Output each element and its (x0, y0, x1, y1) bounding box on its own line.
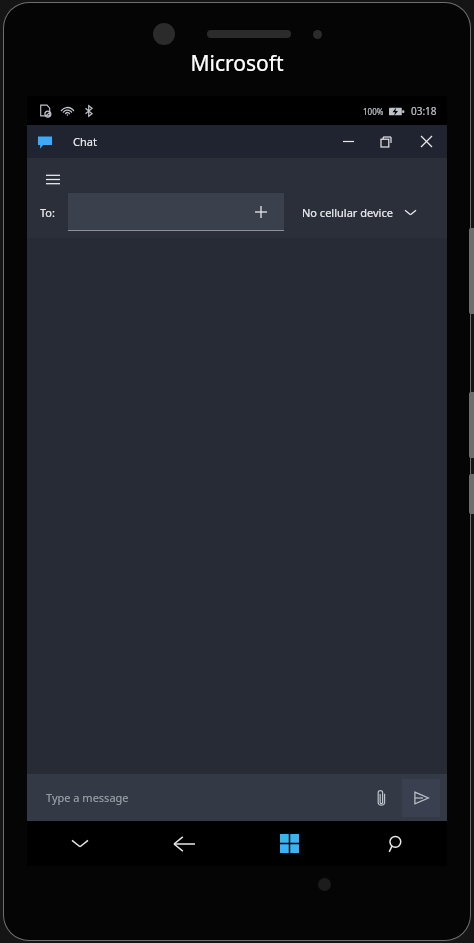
staticText: 100% (363, 106, 384, 117)
staticText: To: (40, 205, 55, 220)
button[interactable]: Restore (367, 125, 405, 158)
staticText: Type a message (46, 790, 129, 805)
button[interactable]: Back (132, 821, 237, 866)
button[interactable]: Send (402, 779, 440, 817)
button[interactable]: Minimize (329, 125, 367, 158)
staticText: No cellular device (302, 205, 393, 220)
button[interactable]: No cellular device (302, 199, 416, 226)
button[interactable]: Menu (40, 166, 66, 192)
button[interactable]: Close (405, 125, 447, 158)
staticText: 03:18 (411, 104, 437, 118)
button[interactable]: Search (342, 821, 447, 866)
button[interactable]: Start (237, 821, 342, 866)
other: Add recipient (252, 203, 270, 221)
button[interactable]: Add recipient (68, 193, 284, 231)
button[interactable]: Hide (27, 821, 132, 866)
staticText: Chat (73, 134, 97, 149)
staticText: Microsoft (190, 49, 284, 78)
button[interactable]: Attach (364, 781, 398, 815)
